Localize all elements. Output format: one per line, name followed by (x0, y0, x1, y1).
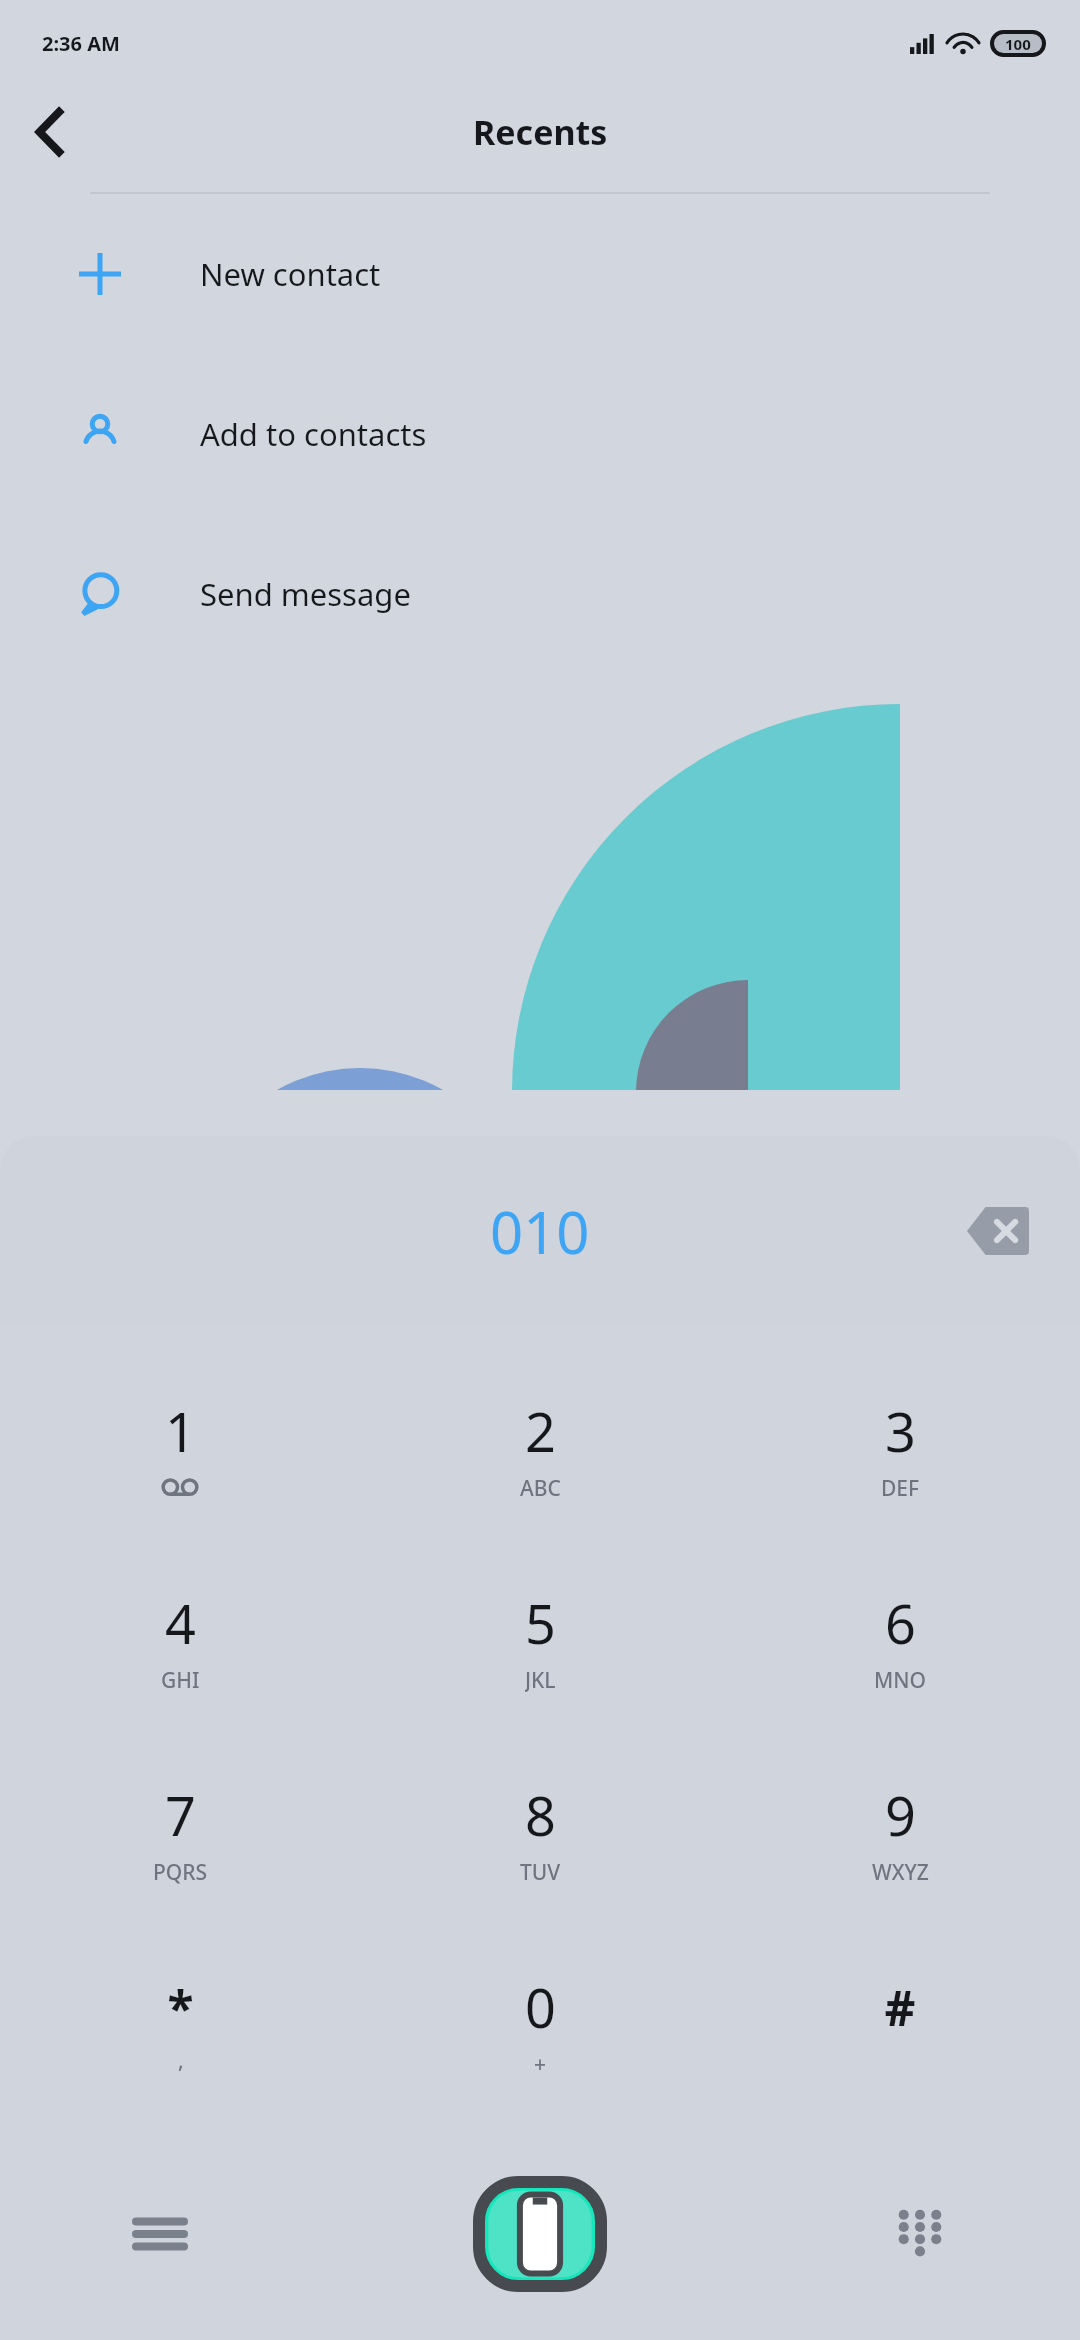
staticText: ABC (520, 1474, 561, 1502)
button[interactable]: Add to contacts (0, 354, 1080, 514)
staticText: New contact (200, 253, 381, 295)
staticText: 6 (885, 1586, 916, 1660)
button[interactable]: 7 (0, 1736, 360, 1928)
button[interactable]: New contact (0, 194, 1080, 354)
staticText: 1 (165, 1394, 196, 1468)
staticText: JKL (525, 1666, 556, 1694)
button[interactable]: # (720, 1928, 1080, 2120)
button[interactable]: 6 (720, 1544, 1080, 1736)
staticText: 010 (490, 1192, 590, 1271)
button[interactable]: Send message (0, 514, 1080, 674)
staticText: WXYZ (872, 1858, 929, 1886)
staticText: 4 (165, 1586, 196, 1660)
staticText: 0 (525, 1970, 556, 2044)
button[interactable]: 2 (360, 1352, 720, 1544)
staticText: 2:36 AM (42, 30, 120, 57)
button[interactable]: 4 (0, 1544, 360, 1736)
staticText: 3 (885, 1394, 916, 1468)
staticText: PQRS (153, 1858, 208, 1886)
staticText: 9 (885, 1778, 916, 1852)
staticText: 7 (165, 1778, 196, 1852)
button[interactable]: * (0, 1928, 360, 2120)
staticText: + (534, 2050, 547, 2078)
button[interactable]: 9 (720, 1736, 1080, 1928)
staticText: MNO (874, 1666, 927, 1694)
button[interactable]: Back (18, 100, 82, 164)
staticText: TUV (520, 1858, 561, 1886)
button[interactable]: 5 (360, 1544, 720, 1736)
staticText: 2 (525, 1394, 556, 1468)
staticText: # (884, 1975, 916, 2040)
staticText: , (178, 2046, 184, 2074)
button[interactable]: 8 (360, 1736, 720, 1928)
staticText: 100 (1005, 34, 1031, 54)
staticText: GHI (161, 1666, 200, 1694)
staticText: 8 (525, 1778, 556, 1852)
button[interactable]: Call (467, 2171, 613, 2297)
staticText: DEF (881, 1474, 920, 1502)
staticText: Add to contacts (200, 413, 427, 455)
staticText: 5 (525, 1586, 556, 1660)
button[interactable]: 0 (360, 1928, 720, 2120)
button[interactable]: Keypad (878, 2192, 962, 2276)
staticText: Send message (200, 573, 411, 615)
staticText: Recents (473, 109, 608, 155)
button[interactable]: 1 (0, 1352, 360, 1544)
button[interactable]: Call log (118, 2192, 202, 2276)
staticText: * (167, 1975, 194, 2040)
button[interactable]: Backspace (950, 1183, 1046, 1279)
button[interactable]: 3 (720, 1352, 1080, 1544)
